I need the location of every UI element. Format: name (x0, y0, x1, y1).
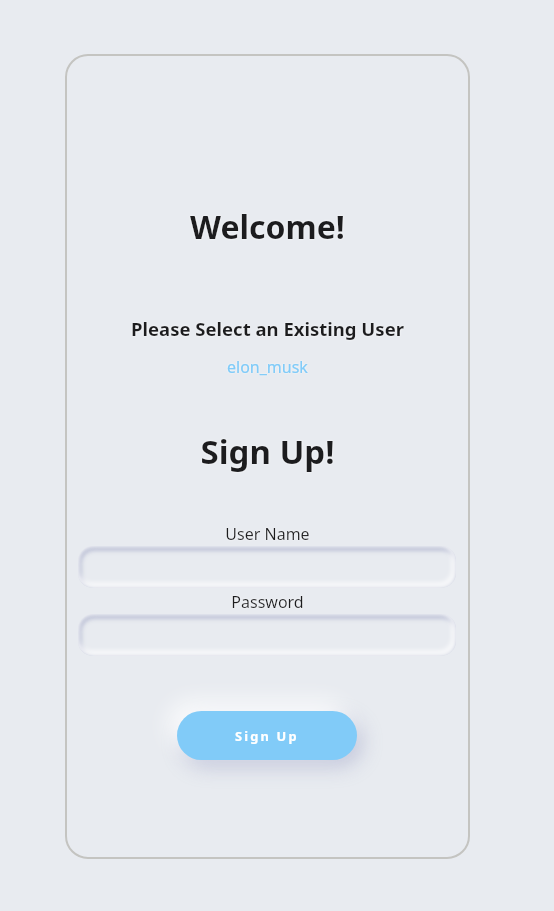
staticText: Sign Up (235, 727, 299, 744)
staticText: Password (65, 591, 470, 613)
staticText: Welcome! (65, 205, 470, 249)
staticText: elon_musk (227, 356, 308, 378)
button[interactable]: Sign Up (177, 711, 357, 760)
staticText: Sign Up! (65, 429, 470, 474)
button[interactable]: elon_musk (227, 356, 308, 378)
staticText: Please Select an Existing User (65, 316, 470, 341)
staticText: User Name (65, 523, 470, 545)
